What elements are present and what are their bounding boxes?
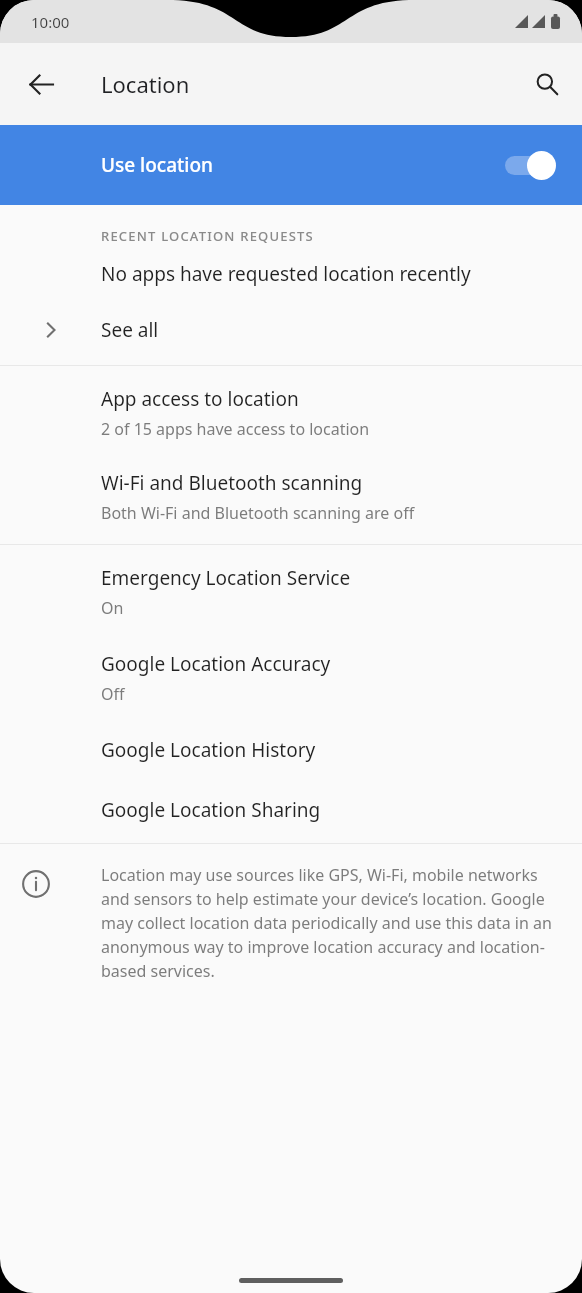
staticText: Emergency Location Service [101,565,351,591]
button[interactable]: Emergency Location Service [0,545,582,619]
staticText: Google Location Sharing [101,797,321,823]
button[interactable]: Google Location Accuracy [0,619,582,705]
staticText: Both Wi-Fi and Bluetooth scanning are of… [101,502,415,524]
staticText: Off [101,683,125,705]
staticText: On [101,597,124,619]
button[interactable]: Google Location History [0,705,582,763]
staticText: Google Location History [101,737,316,763]
staticText: App access to location [101,386,299,412]
staticText: Google Location Accuracy [101,651,331,677]
staticText: No apps have requested location recently [101,261,471,287]
button[interactable]: Wi-Fi and Bluetooth scanning [0,440,582,544]
button[interactable]: App access to location [0,366,582,440]
staticText: Use location [101,152,502,178]
button[interactable]: Back [13,56,69,112]
staticText: RECENT LOCATION REQUESTS [101,227,314,245]
staticText: See all [101,317,159,343]
staticText: Location [101,69,190,99]
button[interactable]: Google Location Sharing [0,763,582,843]
staticText: Wi-Fi and Bluetooth scanning [101,470,363,496]
staticText: 10:00 [31,12,70,32]
button[interactable]: See all [0,305,582,351]
button[interactable]: No apps have requested location recently [0,245,582,305]
staticText: Location may use sources like GPS, Wi-Fi… [101,864,552,982]
staticText: 2 of 15 apps have access to location [101,418,370,440]
button[interactable]: Use location [0,125,582,205]
button[interactable]: Search [519,56,575,112]
